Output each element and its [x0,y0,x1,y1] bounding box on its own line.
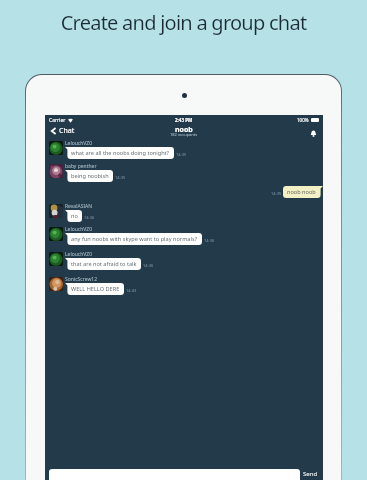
staticText: 2:43 PM [175,117,193,123]
button[interactable]: Send [298,468,322,480]
staticText: Carrier [49,117,66,124]
staticText: 182 occupants [170,132,198,137]
button[interactable]: that are not afraid to talk [65,258,141,270]
staticText: that are not afraid to talk [71,260,137,268]
staticText: 14:35 [176,152,187,157]
button[interactable] [49,469,300,480]
button[interactable]: Back to Chat [48,124,77,138]
staticText: SonicScrew12 [65,276,98,283]
staticText: 14:35 [115,175,126,180]
button[interactable]: noob noob [283,186,323,198]
staticText: noob [175,125,193,135]
staticText: no [71,212,78,220]
staticText: 14:36 [143,263,154,268]
button[interactable]: being noobish [65,170,113,182]
button[interactable]: WELL HELLO DERE [65,283,124,295]
button[interactable]: no [65,210,82,222]
staticText: any fun noobs with skype want to play no… [71,235,198,243]
button[interactable]: what are all the noobs doing tonight? [65,147,174,159]
button[interactable]: Notifications [307,127,319,139]
staticText: noob noob [287,188,316,196]
staticText: 14:35 [271,191,282,196]
staticText: what are all the noobs doing tonight? [71,149,170,157]
button[interactable]: any fun noobs with skype want to play no… [65,233,202,245]
staticText: 100% [297,117,309,123]
staticText: LelouchVZ0 [65,251,93,258]
staticText: 14:43 [126,288,137,293]
staticText: LelouchVZ0 [65,140,93,147]
staticText: LelouchVZ0 [65,226,93,233]
staticText: Chat [59,126,75,136]
staticText: WELL HELLO DERE [71,285,120,293]
staticText: Create and join a group chat [0,9,367,36]
staticText: RevalASIAN [65,203,93,210]
staticText: baby penther [65,163,97,170]
staticText: 14:36 [204,238,215,243]
staticText: being noobish [71,172,109,180]
staticText: 14:36 [84,215,95,220]
staticText: Send [303,470,318,478]
